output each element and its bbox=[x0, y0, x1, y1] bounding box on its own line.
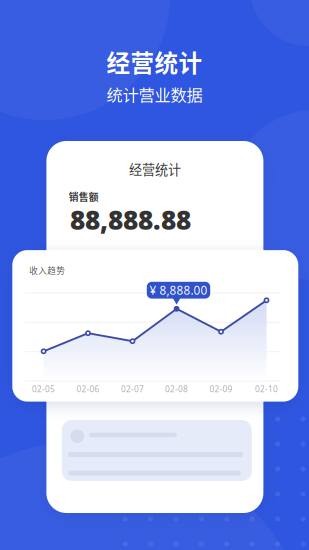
button[interactable]: ¥ 8,888.00 bbox=[147, 282, 210, 299]
staticText: 02-06 bbox=[76, 383, 99, 395]
staticText: 经营统计 bbox=[129, 159, 181, 178]
staticText: 收入趋势 bbox=[29, 264, 65, 276]
staticText: ¥ 8,888.00 bbox=[149, 282, 207, 298]
staticText: 02-09 bbox=[209, 383, 232, 395]
staticText: 统计营业数据 bbox=[106, 82, 202, 106]
staticText: 02-07 bbox=[121, 383, 144, 395]
staticText: 02-05 bbox=[32, 383, 55, 395]
staticText: 02-08 bbox=[165, 383, 188, 395]
staticText: 88,888.88 bbox=[70, 202, 191, 237]
staticText: 02-10 bbox=[255, 383, 278, 395]
staticText: 销售额 bbox=[69, 189, 99, 204]
staticText: 经营统计 bbox=[106, 44, 202, 79]
